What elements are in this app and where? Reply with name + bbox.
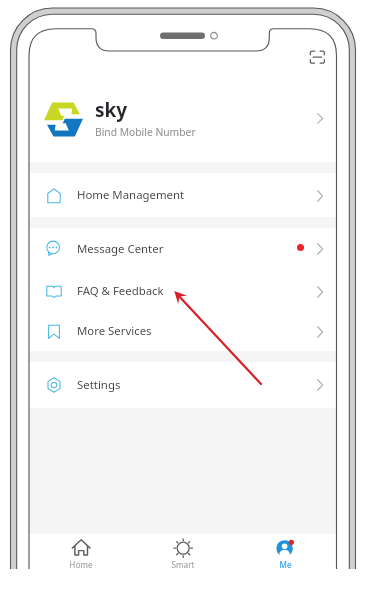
button[interactable]: Settings xyxy=(29,362,337,408)
staticText: FAQ & Feedback xyxy=(77,283,164,299)
button[interactable]: Scan QR code xyxy=(306,46,329,68)
staticText: sky xyxy=(95,97,128,123)
button[interactable]: FAQ & Feedback xyxy=(29,269,337,310)
button[interactable]: Message Center xyxy=(29,228,337,269)
button[interactable]: More Services xyxy=(29,310,337,351)
staticText: Home xyxy=(69,559,93,569)
staticText: Message Center xyxy=(77,241,164,257)
button[interactable]: sky xyxy=(29,62,337,162)
staticText: More Services xyxy=(77,323,152,339)
staticText: Smart xyxy=(171,559,195,569)
button[interactable]: Me xyxy=(261,534,309,569)
button[interactable]: Home xyxy=(57,534,105,569)
staticText: Settings xyxy=(77,377,121,393)
button[interactable]: Home Management xyxy=(29,173,337,217)
button[interactable]: Smart xyxy=(159,534,207,569)
staticText: Home Management xyxy=(77,187,185,203)
staticText: Bind Mobile Number xyxy=(95,125,196,139)
staticText: Me xyxy=(279,559,292,569)
